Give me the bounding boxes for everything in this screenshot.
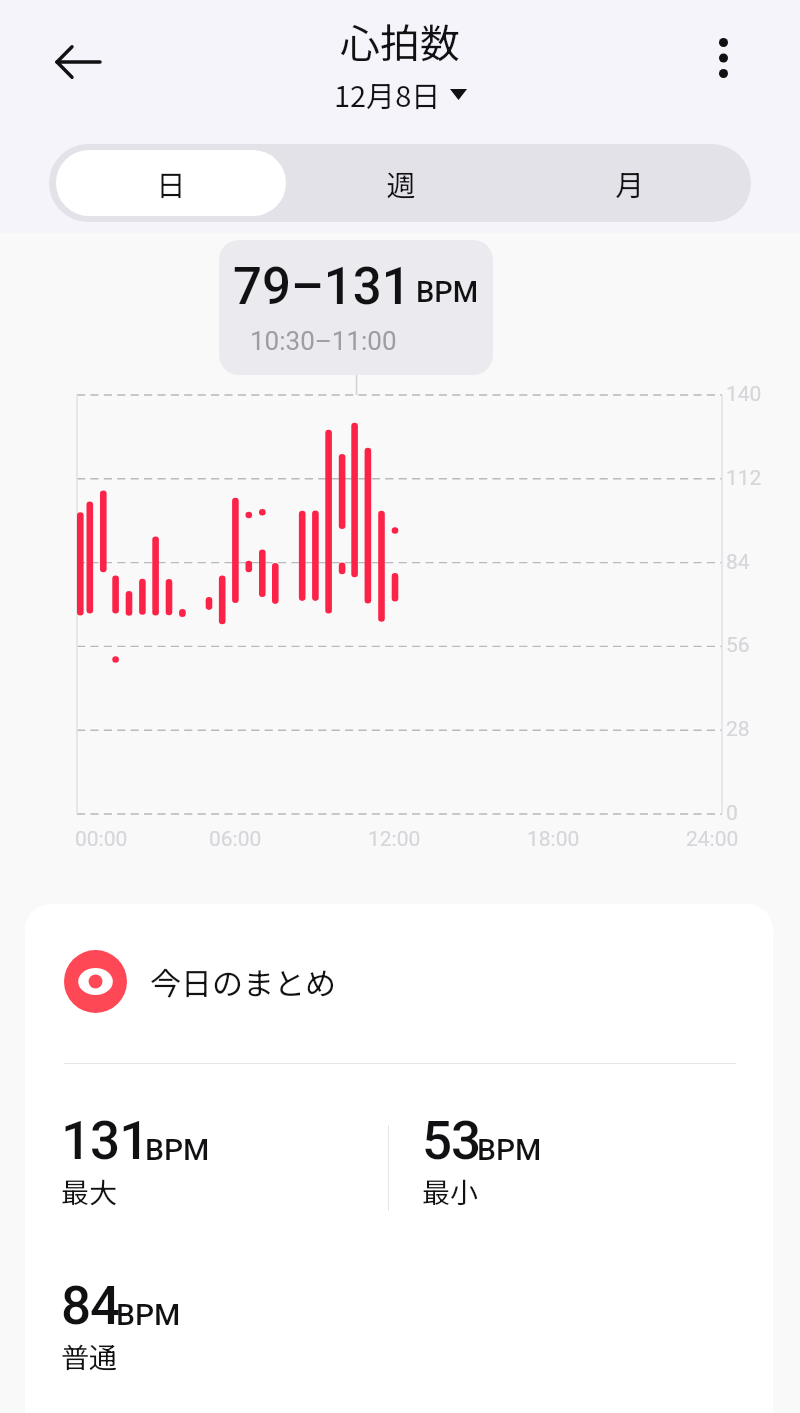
staticText: 00:00 [75, 827, 128, 852]
staticText: 84 [726, 550, 750, 575]
button[interactable]: Back [42, 26, 114, 98]
staticText: 84 [61, 1275, 120, 1337]
staticText: 週 [386, 162, 416, 204]
staticText: 12:00 [368, 827, 421, 852]
staticText: BPM [416, 275, 479, 309]
staticText: 53 [422, 1110, 481, 1172]
staticText: 79–131 [233, 257, 411, 317]
button[interactable]: 週 [286, 150, 515, 216]
button[interactable]: 今日のまとめ [25, 904, 773, 1058]
staticText: 最大 [61, 1171, 118, 1212]
staticText: 今日のまとめ [150, 959, 336, 1004]
staticText: 普通 [61, 1336, 118, 1377]
staticText: 24:00 [686, 827, 739, 852]
button[interactable]: 84 [61, 1275, 361, 1378]
staticText: 28 [726, 717, 750, 742]
staticText: 心拍数 [340, 12, 460, 70]
staticText: 112 [726, 466, 762, 491]
button[interactable]: 日 [56, 150, 286, 216]
staticText: 56 [726, 633, 750, 658]
staticText: 10:30–11:00 [250, 326, 397, 356]
button[interactable]: 53 [422, 1110, 722, 1213]
button[interactable]: 月 [515, 150, 744, 216]
button[interactable]: 79–131 [219, 240, 493, 375]
staticText: 月 [615, 162, 645, 204]
staticText: BPM [116, 1297, 181, 1332]
staticText: BPM [477, 1132, 542, 1167]
staticText: 131 [61, 1110, 149, 1172]
staticText: 18:00 [527, 827, 580, 852]
button[interactable]: 131 [61, 1110, 361, 1213]
staticText: BPM [145, 1132, 210, 1167]
staticText: 06:00 [209, 827, 262, 852]
button[interactable]: 12月8日 [334, 73, 467, 115]
staticText: 12月8日 [334, 73, 441, 115]
staticText: 日 [156, 162, 186, 204]
staticText: 140 [726, 382, 762, 407]
staticText: 0 [726, 801, 738, 826]
staticText: 最小 [422, 1171, 479, 1212]
button[interactable]: More options [691, 26, 755, 90]
